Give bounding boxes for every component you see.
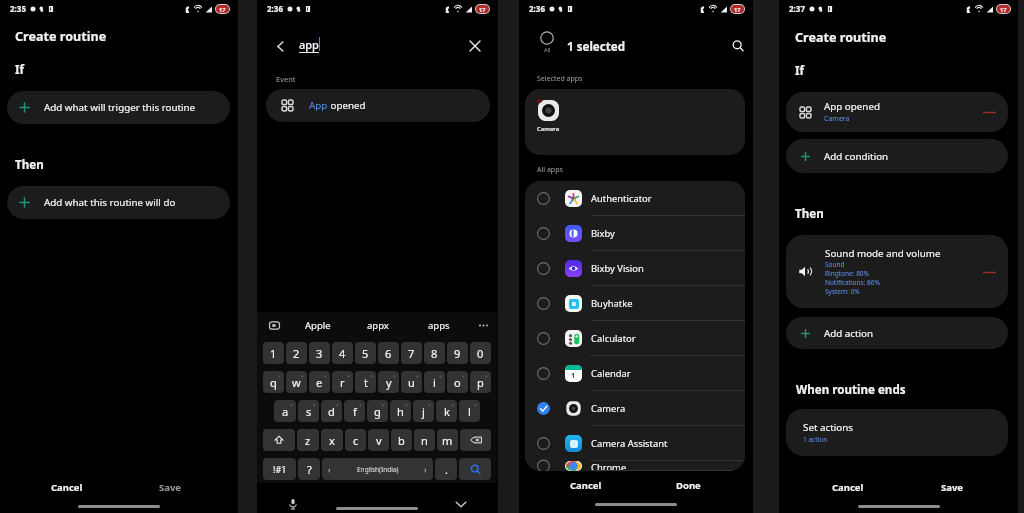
button[interactable]: 7: [401, 342, 422, 364]
staticText: v: [376, 433, 382, 448]
button[interactable]: .: [435, 458, 457, 480]
staticText: Ringtone: 80%: [825, 269, 869, 278]
button[interactable]: Chrome: [525, 461, 745, 471]
staticText: ›: [424, 464, 427, 475]
staticText: e: [316, 375, 323, 390]
button[interactable]: Add what this routine will do: [7, 186, 230, 219]
button[interactable]: Save: [887, 473, 1018, 501]
button[interactable]: Backspace: [460, 429, 491, 451]
button[interactable]: 1: [525, 356, 745, 391]
button[interactable]: Authenticator: [525, 181, 745, 216]
staticText: opened: [328, 99, 366, 112]
button[interactable]: Cancel: [0, 473, 133, 501]
button[interactable]: Remove action: [981, 264, 997, 280]
button[interactable]: ‹: [322, 458, 433, 480]
button[interactable]: Add condition: [786, 139, 1008, 173]
button[interactable]: Camera: [536, 98, 561, 133]
button[interactable]: Apple: [290, 314, 346, 336]
button[interactable]: p: [470, 371, 491, 393]
button[interactable]: appx: [350, 314, 406, 336]
button[interactable]: 2: [286, 342, 307, 364]
button[interactable]: Camera: [525, 391, 745, 426]
button[interactable]: 5: [355, 342, 376, 364]
button[interactable]: w: [286, 371, 307, 393]
button[interactable]: e: [309, 371, 330, 393]
button[interactable]: Save: [104, 473, 237, 501]
button[interactable]: n: [414, 429, 435, 451]
button[interactable]: Camera Assistant: [525, 426, 745, 461]
button[interactable]: 0: [470, 342, 491, 364]
staticText: 9: [454, 346, 461, 361]
staticText: 2:37: [789, 3, 805, 14]
staticText: k: [444, 404, 450, 419]
button[interactable]: Sound mode and volume: [786, 235, 1008, 308]
button[interactable]: Shift: [263, 429, 295, 451]
button[interactable]: Clipboard: [266, 317, 282, 333]
button[interactable]: apps: [411, 314, 467, 336]
button[interactable]: B: [525, 286, 745, 321]
staticText: All: [544, 46, 551, 53]
button[interactable]: y: [378, 371, 399, 393]
button[interactable]: Search: [459, 458, 491, 480]
staticText: ?: [307, 462, 312, 477]
button[interactable]: Voice input: [285, 496, 301, 512]
button[interactable]: Cancel: [519, 471, 653, 499]
button[interactable]: Bixby Vision: [525, 251, 745, 286]
button[interactable]: k: [436, 400, 457, 422]
button[interactable]: 3: [309, 342, 330, 364]
button[interactable]: Hide keyboard: [453, 496, 469, 512]
button[interactable]: Remove condition: [981, 104, 997, 120]
button[interactable]: i: [424, 371, 445, 393]
staticText: z: [305, 433, 311, 448]
button[interactable]: Back: [267, 33, 293, 59]
button[interactable]: r: [332, 371, 353, 393]
button[interactable]: h: [390, 400, 411, 422]
button[interactable]: 4: [332, 342, 353, 364]
staticText: 5: [362, 346, 369, 361]
staticText: All apps: [537, 165, 563, 175]
button[interactable]: 8: [424, 342, 445, 364]
button[interactable]: d: [321, 400, 342, 422]
button[interactable]: g: [367, 400, 388, 422]
button[interactable]: q: [263, 371, 284, 393]
staticText: !#1: [273, 463, 287, 475]
button[interactable]: t: [355, 371, 376, 393]
button[interactable]: Search: [725, 33, 751, 59]
button[interactable]: z: [297, 429, 319, 451]
staticText: Set actions: [803, 421, 853, 434]
button[interactable]: Cancel: [779, 473, 916, 501]
button[interactable]: c: [345, 429, 366, 451]
button[interactable]: m: [437, 429, 458, 451]
button[interactable]: More options: [475, 317, 491, 333]
button[interactable]: Bixby: [525, 216, 745, 251]
button[interactable]: j: [413, 400, 434, 422]
button[interactable]: App: [266, 89, 490, 122]
button[interactable]: Add action: [786, 317, 1008, 349]
staticText: If: [795, 63, 804, 79]
staticText: Add what this routine will do: [44, 196, 176, 209]
button[interactable]: v: [368, 429, 389, 451]
button[interactable]: Set actions: [786, 409, 1008, 456]
button[interactable]: ?: [298, 458, 320, 480]
button[interactable]: App opened: [786, 92, 1008, 132]
button[interactable]: Done: [625, 471, 752, 499]
button[interactable]: Clear search: [462, 33, 488, 59]
button[interactable]: x: [321, 429, 343, 451]
button[interactable]: a: [274, 400, 296, 422]
button[interactable]: s: [298, 400, 319, 422]
button[interactable]: l: [459, 400, 480, 422]
button[interactable]: 9: [447, 342, 468, 364]
staticText: 0: [477, 346, 484, 361]
button[interactable]: u: [401, 371, 422, 393]
button[interactable]: Calculator: [525, 321, 745, 356]
button[interactable]: b: [391, 429, 412, 451]
button[interactable]: Add what will trigger this routine: [7, 91, 230, 124]
button[interactable]: !#1: [263, 458, 296, 480]
button[interactable]: f: [344, 400, 365, 422]
staticText: Notifications: 86%: [825, 278, 880, 287]
button[interactable]: 1: [263, 342, 284, 364]
button[interactable]: 6: [378, 342, 399, 364]
button[interactable]: All: [540, 31, 554, 53]
button[interactable]: o: [447, 371, 468, 393]
staticText: System: 0%: [825, 287, 860, 296]
